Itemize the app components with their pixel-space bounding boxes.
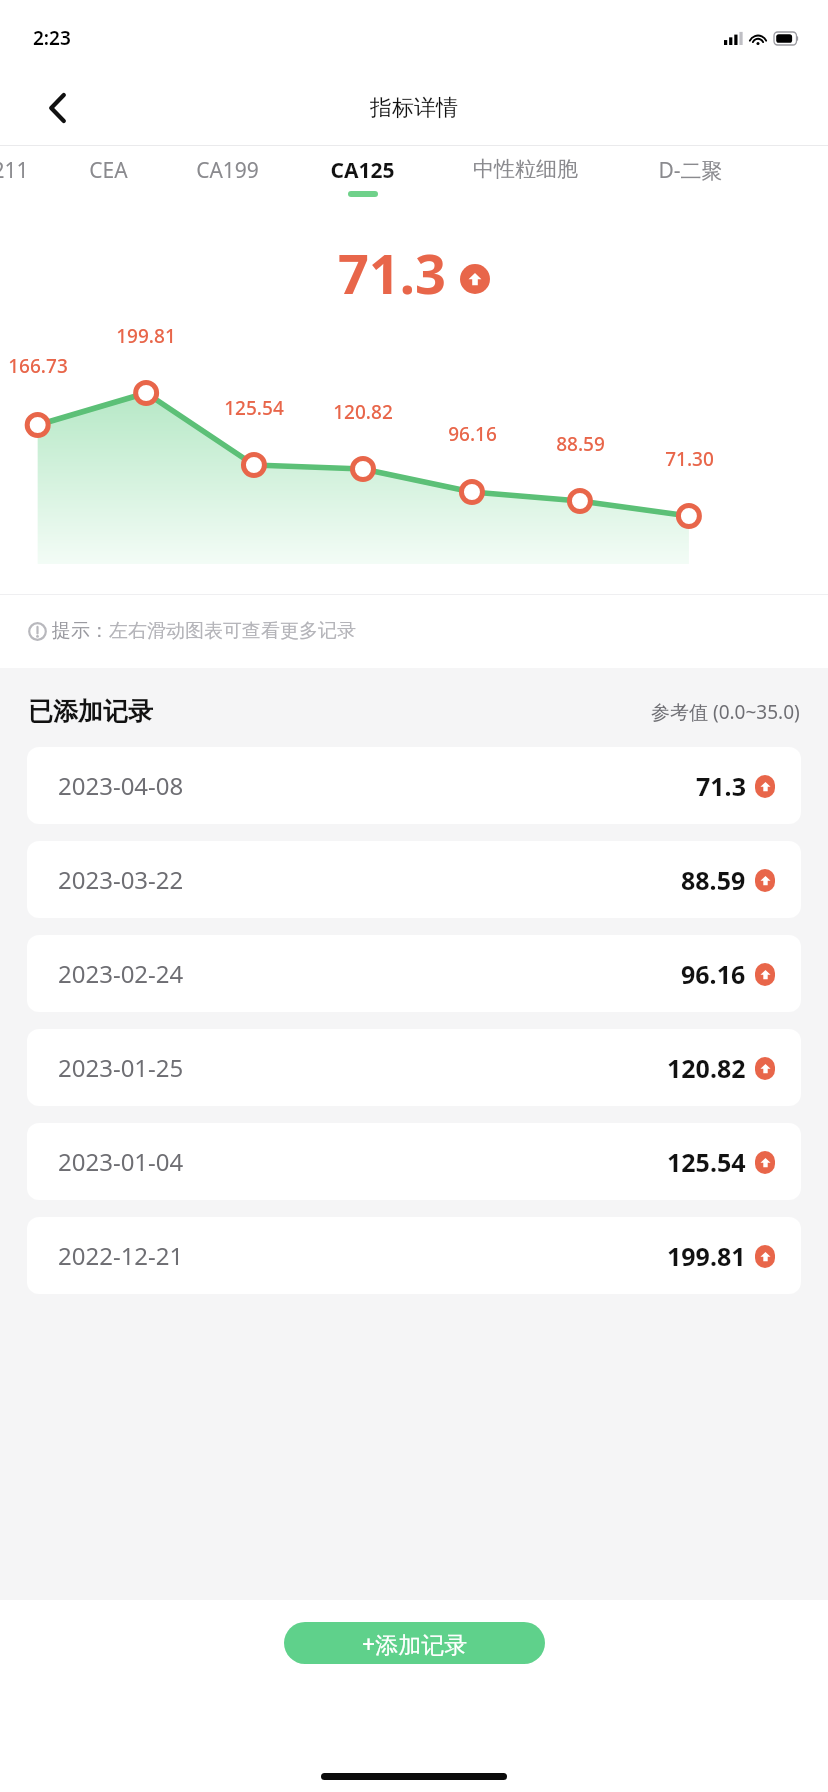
- staticText: +添加记录: [362, 1628, 468, 1659]
- staticText: 71.3: [696, 769, 746, 803]
- staticText: 88.59: [681, 863, 746, 897]
- staticText: 01/25: [338, 590, 389, 616]
- staticText: 166.73: [8, 353, 68, 379]
- button[interactable]: 2022-12-21: [27, 1217, 801, 1294]
- staticText: 2023-02-24: [58, 957, 184, 990]
- button[interactable]: 2023-02-24: [27, 935, 801, 1012]
- staticText: 提示：: [52, 619, 109, 643]
- button[interactable]: 2023-01-25: [27, 1029, 801, 1106]
- staticText: 左右滑动图表可查看更多记录: [109, 619, 356, 643]
- button[interactable]: 返回: [28, 79, 86, 137]
- button[interactable]: CA125: [272, 146, 452, 214]
- staticText: 已添加记录: [28, 696, 153, 727]
- staticText: 199.81: [667, 1239, 746, 1273]
- button[interactable]: 2023-03-22: [27, 841, 801, 918]
- staticText: 211: [0, 156, 29, 185]
- staticText: CEA: [89, 156, 128, 185]
- staticText: 中性粒细胞: [473, 156, 578, 182]
- staticText: 指标详情: [370, 94, 458, 122]
- button[interactable]: +添加记录: [284, 1622, 545, 1664]
- staticText: 2023-03-22: [58, 863, 184, 896]
- staticText: 120.82: [667, 1051, 746, 1085]
- button[interactable]: 2023-01-04: [27, 1123, 801, 1200]
- staticText: 03/22: [555, 590, 606, 616]
- staticText: 12/21: [121, 590, 172, 616]
- staticText: 2023-04-08: [58, 769, 184, 802]
- staticText: 96.16: [681, 957, 746, 991]
- staticText: 71.30: [665, 446, 714, 472]
- button[interactable]: CA199: [137, 146, 317, 214]
- staticText: D-二聚: [658, 156, 723, 185]
- button[interactable]: 2023-04-08: [27, 747, 801, 824]
- staticText: 2023-01-04: [58, 1145, 184, 1178]
- staticText: 02/24: [447, 590, 498, 616]
- staticText: 04/08: [664, 590, 715, 616]
- staticText: 125.54: [667, 1145, 746, 1179]
- staticText: 2023-01-25: [58, 1051, 184, 1084]
- staticText: 96.16: [448, 421, 497, 447]
- button[interactable]: 中性粒细胞: [435, 146, 615, 214]
- staticText: 125.54: [224, 395, 284, 421]
- staticText: 2:23: [33, 25, 71, 51]
- staticText: 2022-12-21: [58, 1239, 184, 1272]
- button[interactable]: CEA: [18, 146, 198, 214]
- staticText: 01/04: [229, 590, 280, 616]
- staticText: 71.3: [338, 236, 446, 310]
- staticText: CA125: [330, 156, 395, 185]
- button[interactable]: 211: [0, 146, 100, 214]
- staticText: 199.81: [116, 323, 176, 349]
- staticText: 88.59: [556, 431, 605, 457]
- staticText: 参考值 (0.0~35.0): [651, 699, 800, 725]
- staticText: 120.82: [333, 399, 393, 425]
- button[interactable]: D-二聚: [600, 146, 780, 214]
- staticText: 12/04: [13, 590, 64, 616]
- staticText: CA199: [196, 156, 259, 185]
